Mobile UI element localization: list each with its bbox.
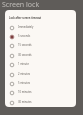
button[interactable]: 2 minutes	[5, 70, 76, 79]
button[interactable]: 30 minutes	[5, 98, 76, 107]
staticText: 1 minute	[18, 62, 29, 66]
button[interactable]: 15 seconds	[5, 41, 76, 50]
button[interactable]: 10 minutes	[5, 88, 76, 97]
staticText: 10 minutes	[18, 90, 32, 94]
button[interactable]: 1 minute	[5, 60, 76, 69]
staticText: Lock after screen timeout	[9, 16, 42, 19]
button[interactable]: 30 seconds	[5, 51, 76, 60]
staticText: Immediately	[18, 25, 34, 29]
staticText: 30 seconds	[18, 53, 32, 57]
staticText: 5 seconds	[18, 34, 31, 38]
staticText: 5 minutes	[18, 81, 31, 85]
staticText: 15 seconds	[18, 43, 32, 47]
staticText: 2 minutes	[18, 72, 31, 76]
button[interactable]: 5 minutes	[5, 79, 76, 88]
button[interactable]: Immediately	[5, 23, 76, 32]
staticText: 30 minutes	[18, 100, 32, 104]
staticText: Screen lock	[2, 0, 40, 10]
button[interactable]: 5 seconds	[5, 32, 76, 41]
